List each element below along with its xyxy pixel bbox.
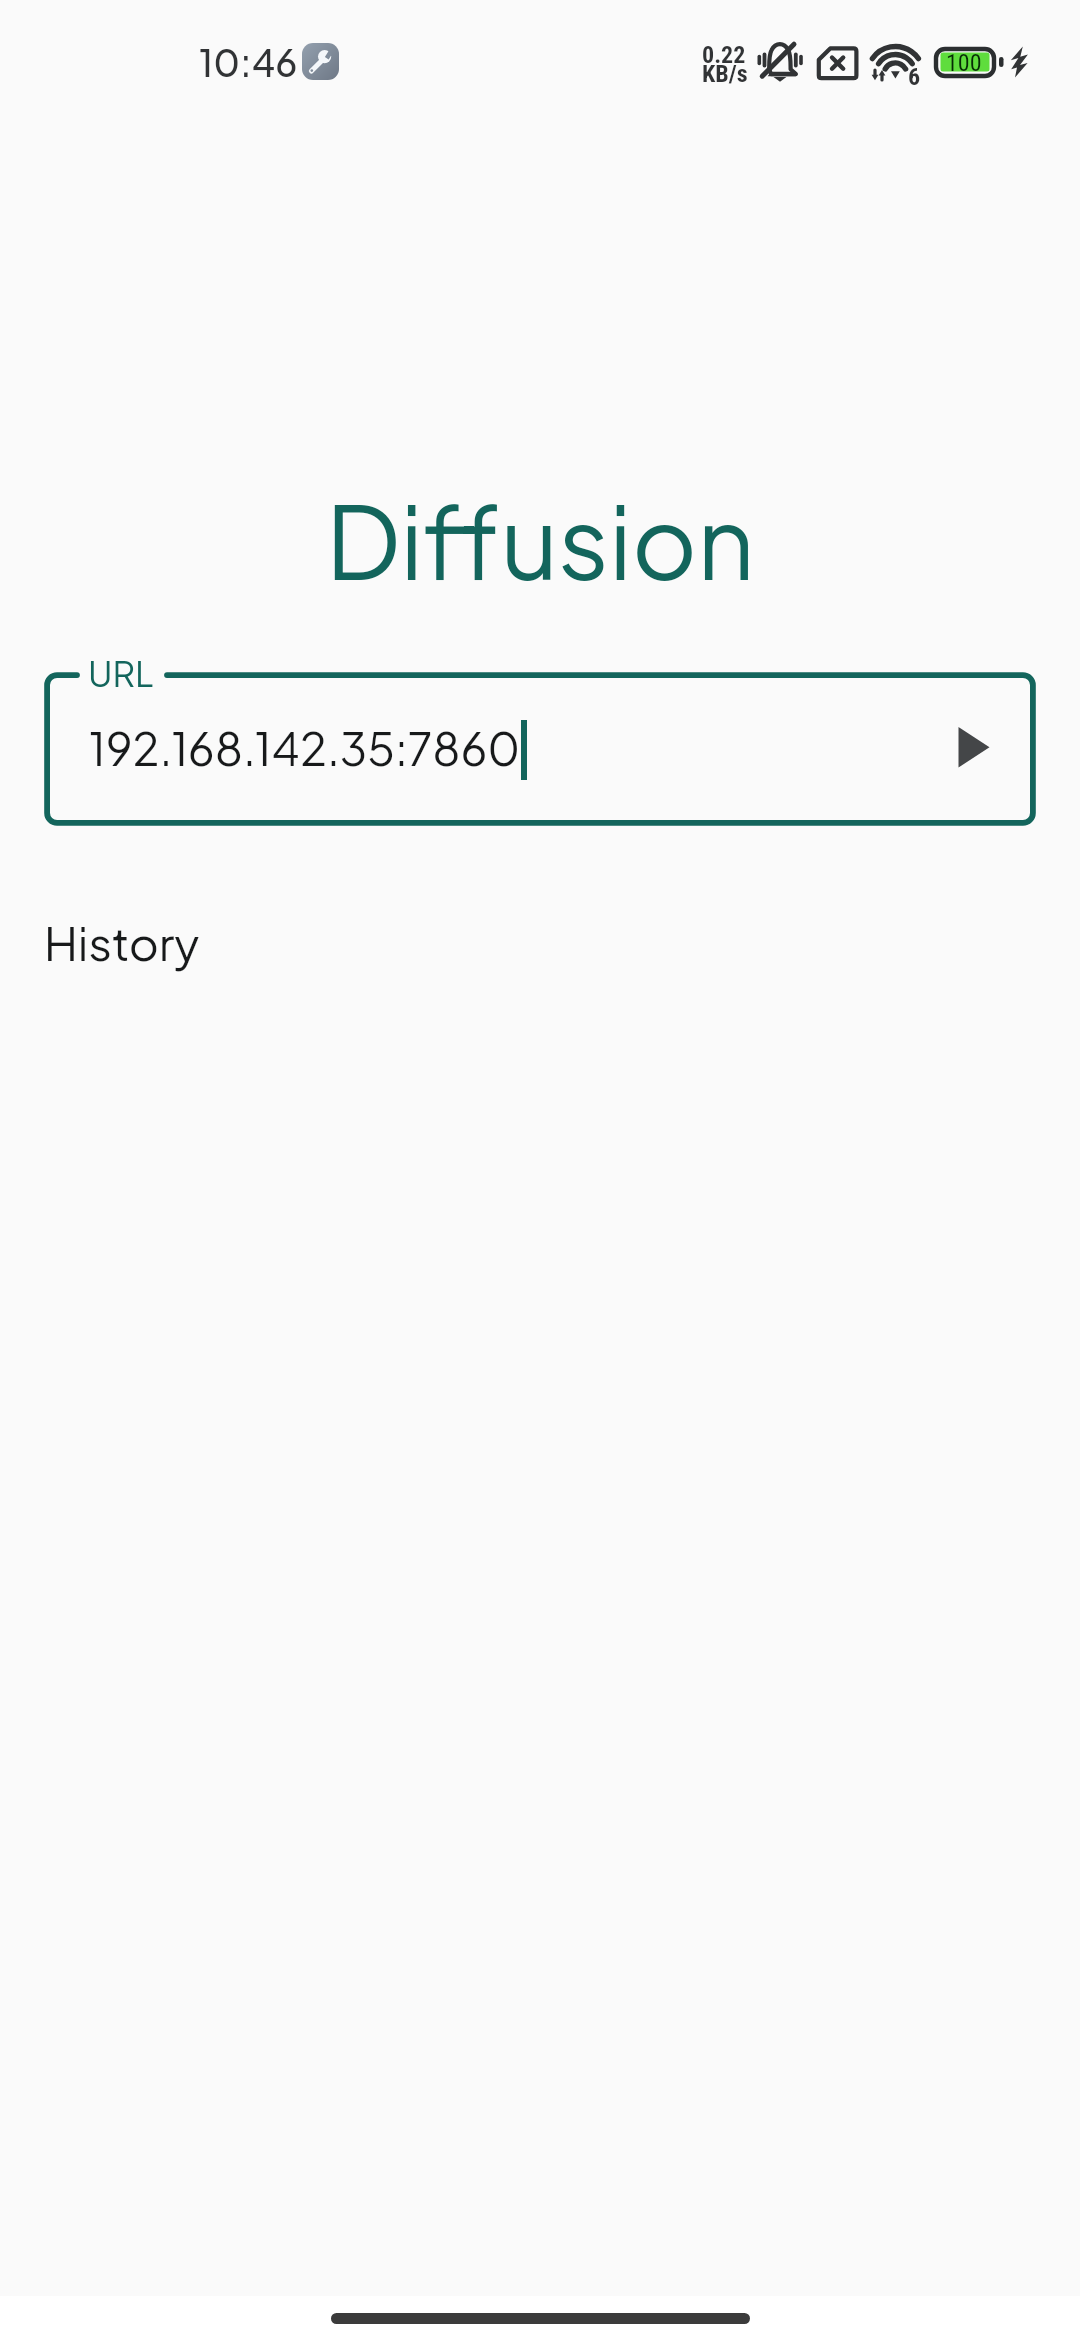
staticText: History [44,913,200,971]
staticText: 0.22 [702,41,746,69]
staticText: 192.168.142.35:7860 [89,719,521,776]
button[interactable]: Send [916,689,1032,805]
staticText: 6 [908,63,921,91]
staticText: 10:46 [199,39,298,86]
staticText: 100 [946,49,982,77]
button[interactable]: URL [44,672,1036,826]
staticText: KB/s [702,60,748,88]
staticText: Diffusion [326,476,755,602]
button[interactable]: History [44,900,1036,980]
staticText: URL [88,651,154,695]
